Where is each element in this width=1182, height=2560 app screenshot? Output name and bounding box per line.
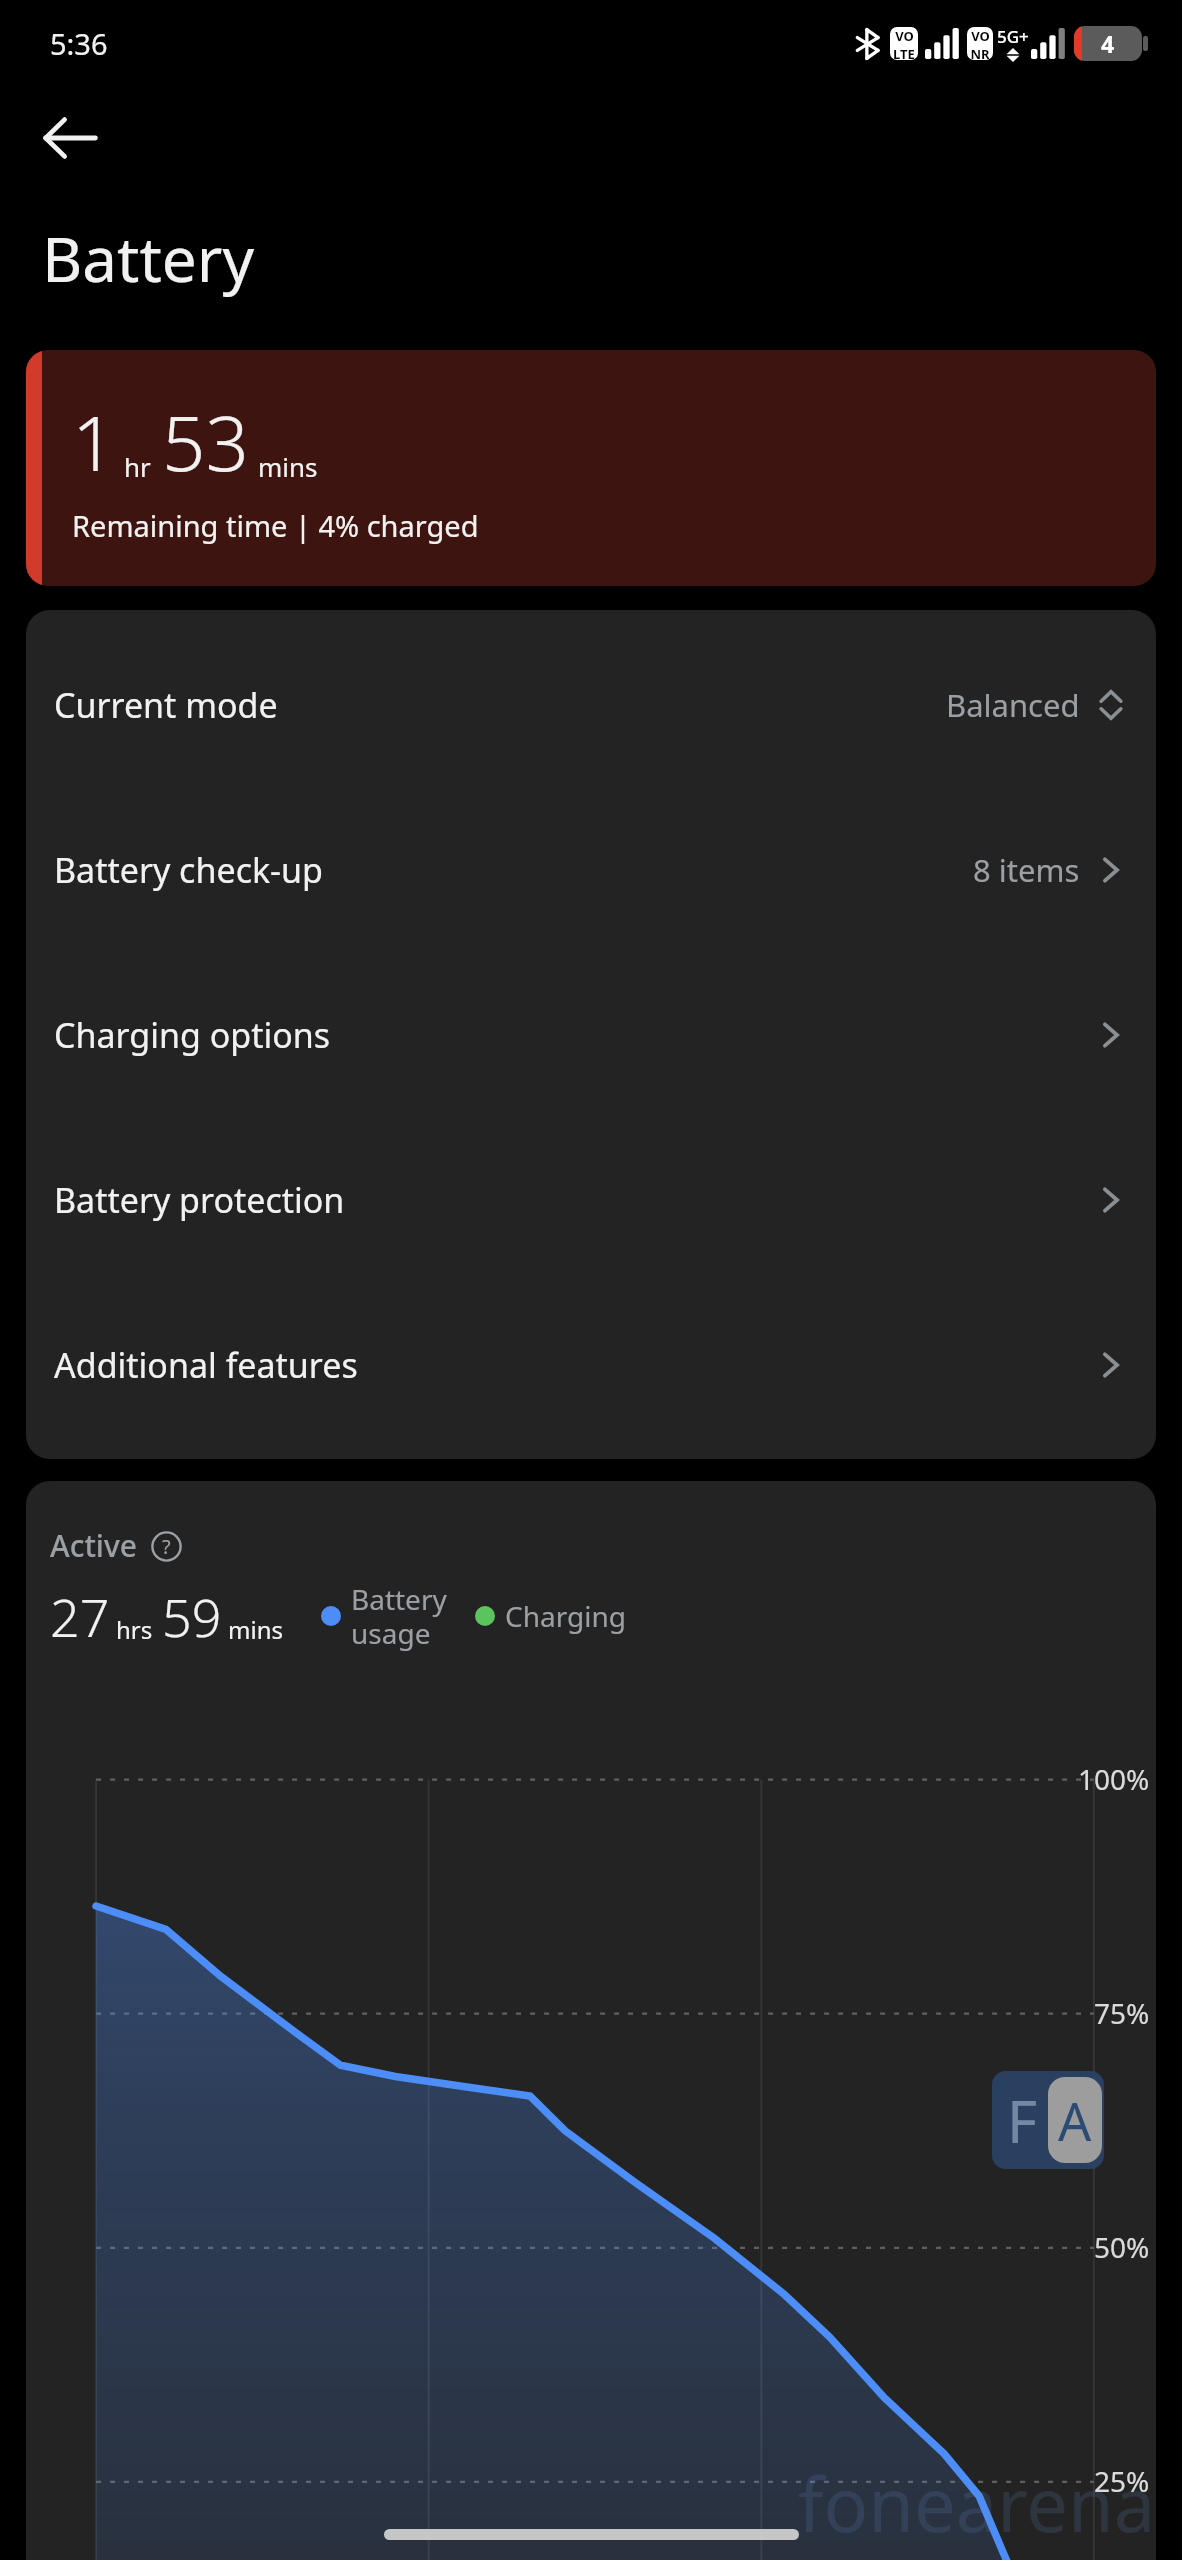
- staticText: Remaining time | 4% charged: [72, 506, 479, 545]
- staticText: Battery protection: [54, 1177, 345, 1223]
- staticText: Additional features: [54, 1342, 358, 1388]
- button[interactable]: Back: [22, 90, 118, 186]
- staticText: 50%: [1094, 2228, 1150, 2266]
- staticText: Battery: [42, 216, 255, 300]
- button[interactable]: Additional features: [26, 1282, 1156, 1447]
- staticText: Charging: [505, 1597, 626, 1635]
- staticText: 25%: [1094, 2462, 1150, 2500]
- staticText: 75%: [1094, 1994, 1150, 2032]
- button[interactable]: 1: [26, 350, 1156, 586]
- staticText: ?: [162, 1533, 171, 1560]
- staticText: Battery usage: [351, 1580, 447, 1652]
- staticText: VO: [895, 27, 914, 45]
- button[interactable]: About active time: [147, 1527, 185, 1565]
- button[interactable]: Battery protection: [26, 1117, 1156, 1282]
- staticText: Current mode: [54, 682, 278, 728]
- button[interactable]: Battery check-up: [26, 787, 1156, 952]
- staticText: 27: [50, 1581, 110, 1652]
- button[interactable]: Charging options: [26, 952, 1156, 1117]
- staticText: Charging options: [54, 1012, 331, 1058]
- staticText: A: [1058, 2085, 1092, 2156]
- staticText: mins: [228, 1613, 283, 1646]
- staticText: F: [1007, 2081, 1038, 2160]
- staticText: hr: [124, 449, 151, 484]
- staticText: LTE: [893, 45, 915, 60]
- staticText: 59: [162, 1581, 222, 1652]
- staticText: Active: [50, 1525, 137, 1566]
- staticText: hrs: [116, 1613, 153, 1646]
- staticText: Balanced: [946, 684, 1080, 726]
- button[interactable]: Current mode: [26, 622, 1156, 787]
- staticText: NR: [970, 45, 990, 60]
- staticText: 53: [162, 390, 249, 494]
- staticText: VO: [971, 27, 990, 45]
- staticText: mins: [258, 449, 318, 484]
- staticText: 8 items: [973, 849, 1080, 891]
- staticText: 5:36: [50, 24, 108, 63]
- staticText: 5G+: [997, 25, 1029, 48]
- staticText: 1: [72, 390, 116, 494]
- staticText: 4: [1101, 28, 1115, 59]
- staticText: fonearena: [798, 2453, 1156, 2554]
- staticText: 100%: [1078, 1760, 1150, 1798]
- staticText: Battery check-up: [54, 847, 323, 893]
